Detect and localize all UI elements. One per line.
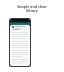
staticText: Simple and clear library [17,4,47,13]
button[interactable]: App preview [10,19,30,66]
button[interactable] [11,25,29,29]
